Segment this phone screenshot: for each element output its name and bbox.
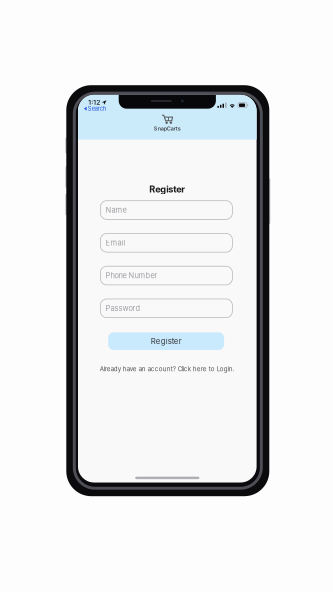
button[interactable]: Name	[100, 201, 232, 219]
button[interactable]: Already have an account? Click here to L…	[100, 365, 235, 373]
staticText: Phone Number	[105, 271, 157, 280]
staticText: SnapCarts	[154, 125, 181, 132]
staticText: 1:12	[88, 98, 100, 106]
staticText: Register	[151, 336, 182, 346]
button[interactable]: Password	[100, 299, 232, 318]
staticText: Already have an account? Click here to L…	[100, 365, 235, 373]
button[interactable]: Phone Number	[100, 266, 232, 285]
staticText: Name	[105, 205, 126, 215]
button[interactable]: Register	[108, 332, 224, 350]
staticText: Password	[105, 304, 140, 313]
staticText: Search	[88, 105, 106, 112]
button[interactable]: Back to Search	[84, 105, 106, 112]
button[interactable]: Email	[100, 233, 232, 252]
staticText: Email	[105, 238, 125, 247]
staticText: Register	[149, 184, 185, 195]
